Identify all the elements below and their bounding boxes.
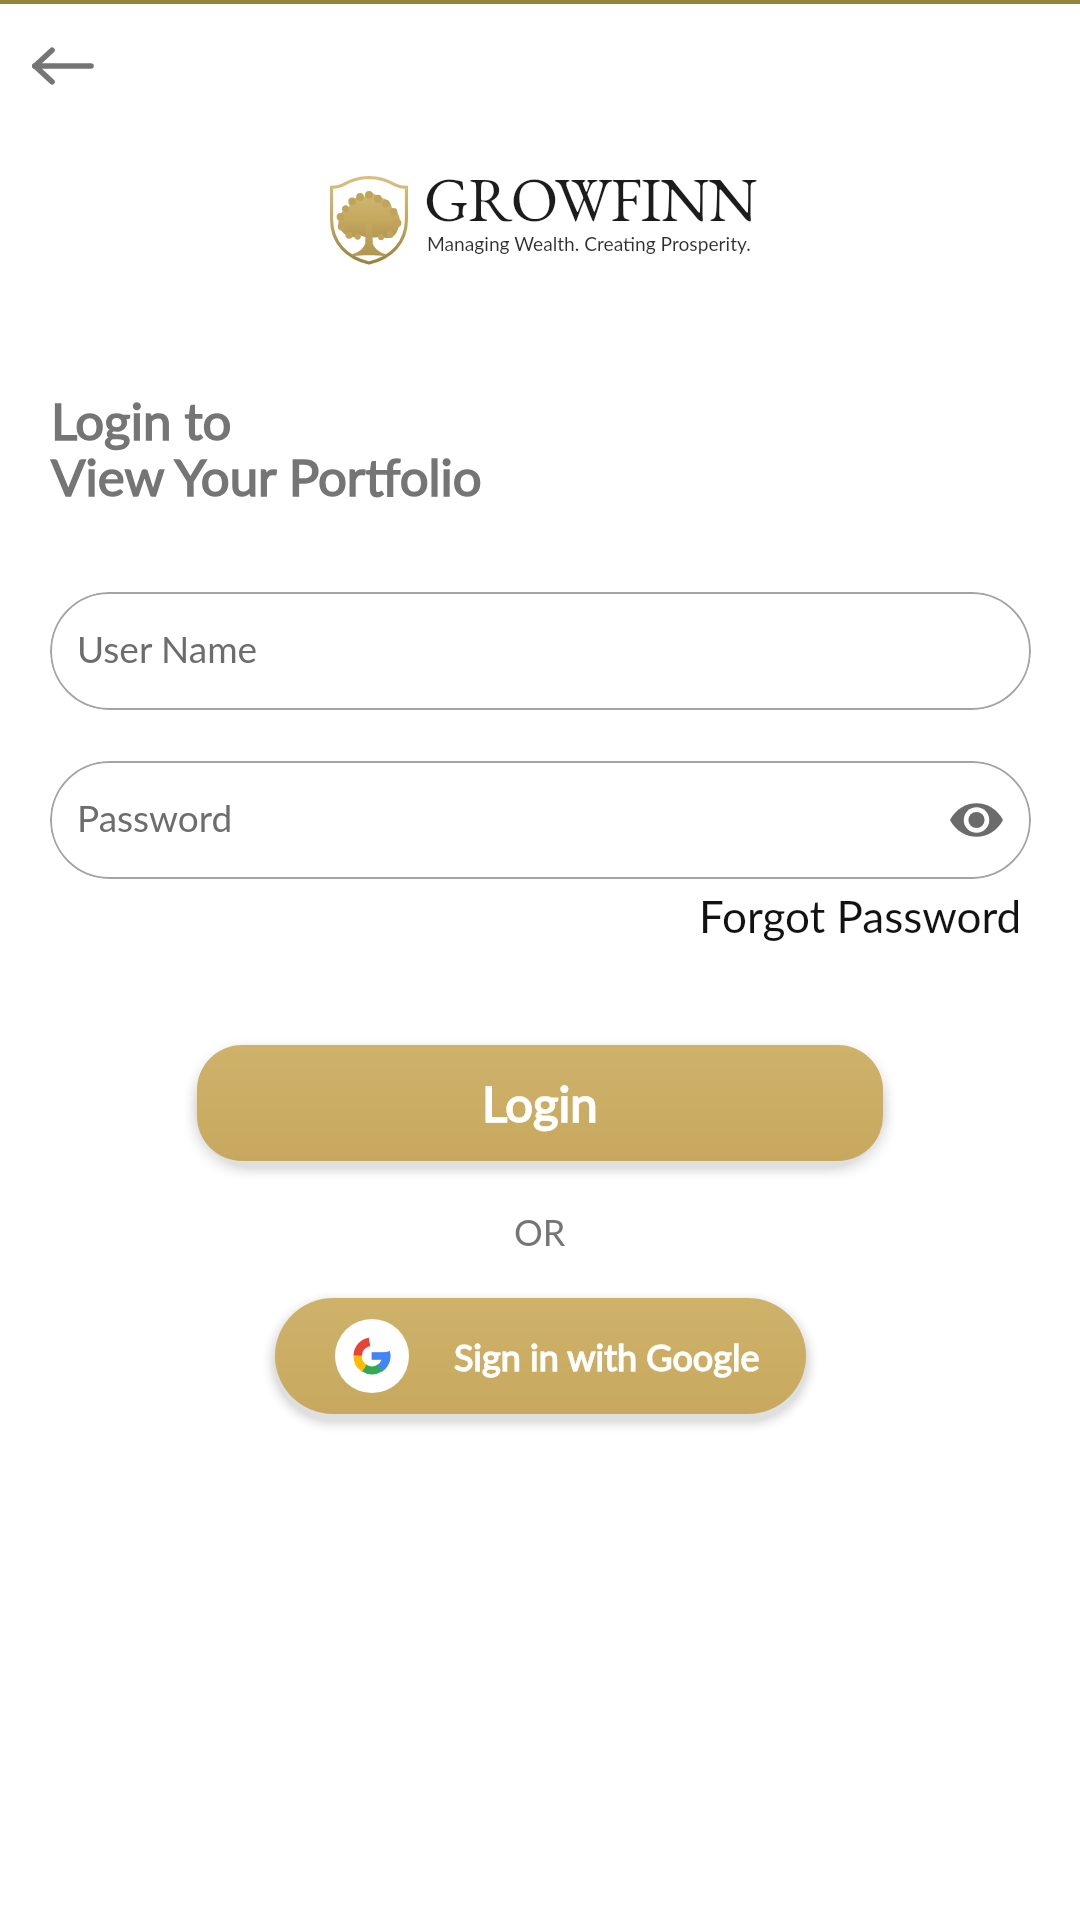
staticText: Login to: [51, 390, 232, 451]
button[interactable]: User Name: [50, 592, 1031, 710]
button[interactable]: Show password: [937, 781, 1015, 859]
staticText: Sign in with Google: [454, 1335, 760, 1378]
staticText: OR: [514, 1210, 566, 1253]
button[interactable]: Back: [14, 16, 114, 116]
button[interactable]: Forgot Password: [699, 890, 1022, 943]
button[interactable]: Sign in with Google: [275, 1298, 806, 1414]
staticText: Password: [77, 795, 233, 839]
staticText: Login: [482, 1074, 598, 1133]
staticText: User Name: [77, 626, 258, 670]
button[interactable]: Login: [197, 1045, 883, 1161]
button[interactable]: Password: [50, 761, 1031, 879]
staticText: View Your Portfolio: [51, 446, 482, 507]
staticText: GROWFINN: [424, 159, 756, 240]
staticText: Managing Wealth. Creating Prosperity.: [427, 232, 751, 255]
